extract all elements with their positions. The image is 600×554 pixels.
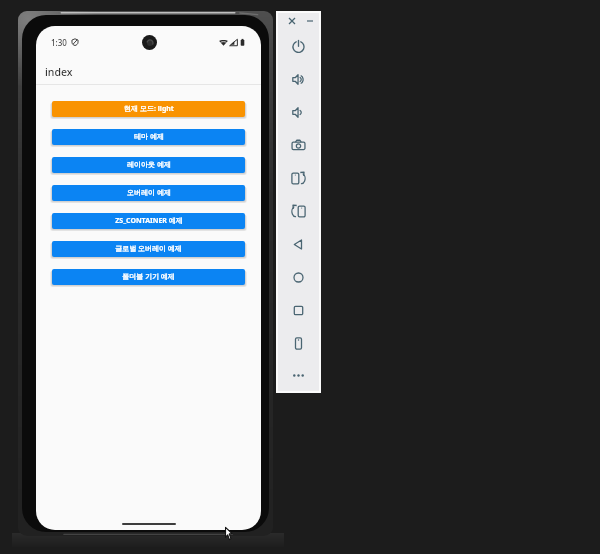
button[interactable]: ZS_CONTAINER 예제 (52, 213, 245, 229)
button[interactable]: Home (278, 261, 319, 294)
button[interactable]: Minimize (302, 13, 318, 29)
button[interactable]: Volume down (278, 96, 319, 129)
staticText: 1:30 (51, 37, 67, 48)
button[interactable]: 현재 모드: light (52, 101, 245, 117)
staticText: 글로벌 오버레이 예제 (115, 244, 182, 254)
button[interactable]: 글로벌 오버레이 예제 (52, 241, 245, 257)
button[interactable]: Take screenshot (278, 129, 319, 162)
button[interactable]: More (278, 360, 319, 391)
button[interactable]: 오버레이 예제 (52, 185, 245, 201)
staticText: 테마 예제 (134, 132, 164, 142)
button[interactable]: Volume up (278, 63, 319, 96)
button[interactable]: Rotate left (278, 162, 319, 195)
staticText: ZS_CONTAINER 예제 (115, 216, 183, 226)
button[interactable]: 테마 예제 (52, 129, 245, 145)
staticText: 레이아웃 예제 (127, 160, 171, 170)
button[interactable]: Rotate right (278, 195, 319, 228)
button[interactable]: Fold (278, 327, 319, 360)
staticText: 폴더블 기기 예제 (122, 272, 175, 282)
button[interactable]: Overview (278, 294, 319, 327)
button[interactable]: Power (278, 30, 319, 63)
button[interactable]: 폴더블 기기 예제 (52, 269, 245, 285)
staticText: 현재 모드: light (124, 104, 174, 114)
staticText: index (45, 65, 73, 79)
button[interactable]: 레이아웃 예제 (52, 157, 245, 173)
button[interactable]: Close (284, 13, 300, 29)
button[interactable]: Back (278, 228, 319, 261)
staticText: 오버레이 예제 (127, 188, 171, 198)
